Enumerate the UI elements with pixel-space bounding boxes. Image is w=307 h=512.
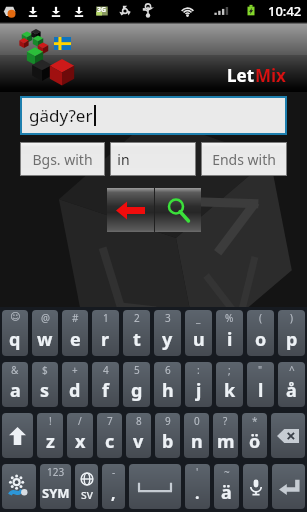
button[interactable]: 6 [154,362,181,407]
button[interactable]: Ends with [202,143,286,175]
button[interactable]: Enter [272,464,305,509]
button[interactable]: ' [185,464,210,509]
button[interactable]: Space [129,464,181,509]
staticText: ; [228,363,231,377]
staticText: c [105,429,115,454]
button[interactable]: _ [185,310,212,356]
button[interactable]: % [216,310,243,356]
staticText: Let [227,64,255,87]
staticText: v [133,429,144,454]
staticText: Ends with [212,150,276,169]
staticText: b [162,429,174,454]
staticText: & [11,363,19,377]
button[interactable]: 1 [92,310,119,356]
staticText: gädy?er [29,104,93,127]
staticText: ^ [289,363,295,377]
button[interactable]: " [247,362,274,407]
button[interactable]: ! [37,413,63,458]
staticText: 3G [97,5,107,15]
button[interactable]: ? [213,413,238,458]
button[interactable]: sv [75,464,98,509]
button[interactable]: ( [247,310,274,356]
button[interactable]: Bgs. with [21,143,104,175]
staticText: - [112,465,116,479]
button[interactable]: 2 [123,310,150,356]
button[interactable]: Backspace [271,413,305,458]
button[interactable]: ☺ [2,310,28,356]
staticText: p [286,327,298,352]
staticText: 0 [194,414,200,428]
button[interactable]: * [242,413,267,458]
staticText: i [227,327,233,352]
button[interactable]: Voice input [243,464,268,509]
staticText: z [46,429,55,454]
button[interactable]: + [62,362,88,407]
button[interactable]: Settings [2,464,36,509]
button[interactable]: / [67,413,93,458]
staticText: j [196,378,202,403]
staticText: : [197,363,200,377]
button[interactable]: @ [32,310,58,356]
staticText: e [70,327,81,352]
staticText: 7 [107,414,113,428]
staticText: 6 [165,363,171,377]
other: Enter [272,464,305,509]
staticText: 1 [103,311,109,325]
button[interactable]: 123 [40,464,71,509]
staticText: 10:42 [268,2,302,20]
staticText: r [101,327,110,352]
button[interactable]: ~ [214,464,239,509]
staticText: ☺ [10,311,21,323]
staticText: ö [249,429,261,454]
button[interactable]: Shift [2,413,33,458]
button[interactable]: ; [216,362,243,407]
button[interactable]: Back [107,188,154,232]
staticText: w [37,327,53,352]
button[interactable]: 9 [155,413,180,458]
staticText: ? [223,414,228,428]
staticText: in [117,150,130,169]
staticText: " [258,363,263,377]
button[interactable]: Search [155,188,201,232]
staticText: s [40,378,50,403]
other: Backspace [271,413,305,458]
button[interactable]: ^ [278,362,305,407]
staticText: h [162,378,174,403]
staticText: / [78,414,82,428]
staticText: y [162,327,173,352]
staticText: + [72,363,78,377]
staticText: . [195,482,200,504]
button[interactable]: 0 [184,413,209,458]
staticText: ä [221,480,232,505]
button[interactable]: 4 [92,362,119,407]
button[interactable]: ) [278,310,305,356]
button[interactable]: 5 [123,362,150,407]
button[interactable]: 7 [97,413,122,458]
button[interactable]: : [185,362,212,407]
button[interactable]: $ [32,362,58,407]
staticText: , [111,482,116,504]
staticText: d [69,378,81,403]
staticText: ~ [224,465,230,479]
staticText: 8 [136,414,142,428]
button[interactable]: # [62,310,88,356]
staticText: @ [41,311,50,325]
staticText: Mix [255,64,286,87]
staticText: 3 [165,311,171,325]
staticText: ! [49,414,52,428]
staticText: 123 [47,465,65,479]
staticText: x [75,429,86,454]
staticText: 9 [165,414,171,428]
staticText: a [10,378,21,403]
button[interactable]: & [2,362,28,407]
button[interactable]: 8 [126,413,151,458]
other: Settings [2,464,36,509]
staticText: k [224,378,236,403]
button[interactable]: 3 [154,310,181,356]
button[interactable]: gädy?er [22,98,285,133]
staticText: Bgs. with [32,150,93,169]
staticText: g [131,378,143,403]
staticText: % [225,311,234,325]
button[interactable]: in [111,143,195,175]
button[interactable]: - [102,464,125,509]
